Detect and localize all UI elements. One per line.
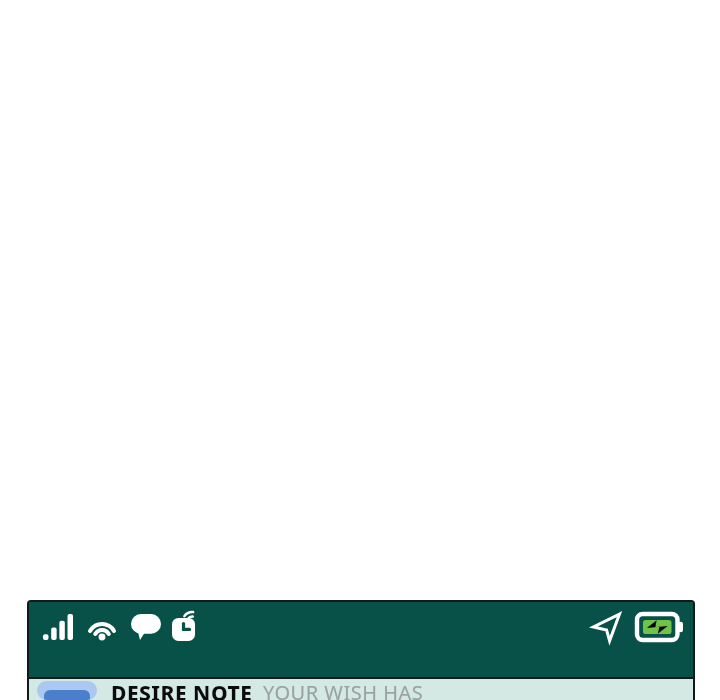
- button[interactable]: DESIRE NOTE: [29, 679, 693, 700]
- button[interactable]: Location in use: [585, 606, 627, 648]
- staticText: YOUR WISH HAS: [263, 679, 424, 700]
- button[interactable]: Battery charging: [633, 606, 687, 648]
- button[interactable]: Mobile signal strength: [37, 606, 79, 648]
- button[interactable]: Wi-Fi connected: [81, 606, 123, 648]
- button[interactable]: Alarm set: [167, 606, 209, 648]
- button[interactable]: New message: [125, 606, 167, 648]
- staticText: DESIRE NOTE: [111, 679, 253, 700]
